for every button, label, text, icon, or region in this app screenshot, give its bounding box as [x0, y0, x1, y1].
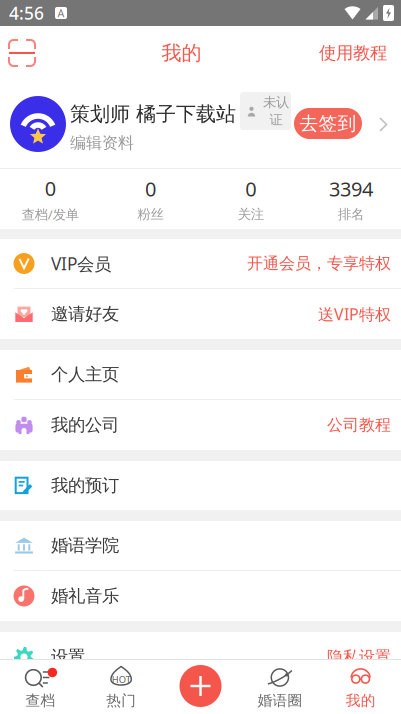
- staticText: 开通会员，专享特权: [247, 254, 391, 273]
- staticText: 婚语学院: [51, 535, 119, 556]
- staticText: 4:56: [9, 1, 44, 24]
- staticText: 我的预订: [51, 475, 119, 496]
- staticText: 证: [269, 111, 282, 128]
- staticText: 我的公司: [51, 414, 119, 436]
- staticText: 关注: [238, 206, 264, 222]
- staticText: 我的: [161, 41, 201, 65]
- button[interactable]: 个人主页: [0, 350, 401, 400]
- staticText: 0: [245, 175, 256, 202]
- staticText: 编辑资料: [70, 133, 134, 153]
- staticText: 设置: [51, 646, 85, 668]
- staticText: VIP会员: [51, 252, 111, 275]
- staticText: 送VIP特权: [318, 303, 391, 325]
- staticText: 去签到: [299, 112, 356, 135]
- staticText: 使用教程: [319, 42, 387, 64]
- button[interactable]: 我的公司: [0, 400, 401, 450]
- staticText: 婚礼音乐: [51, 585, 119, 607]
- staticText: 隐私设置: [327, 647, 391, 667]
- button[interactable]: 婚礼音乐: [0, 571, 401, 621]
- staticText: 0: [45, 175, 56, 201]
- staticText: 查档: [25, 691, 55, 709]
- staticText: 个人主页: [51, 364, 119, 385]
- staticText: 3394: [329, 175, 373, 202]
- button[interactable]: 婚语学院: [0, 521, 401, 571]
- button[interactable]: 查档: [0, 660, 81, 714]
- staticText: A: [57, 6, 64, 20]
- button[interactable]: HOT: [81, 660, 162, 714]
- staticText: 未认: [263, 94, 289, 110]
- button[interactable]: 0: [100, 169, 200, 229]
- button[interactable]: 3394: [301, 169, 401, 229]
- button[interactable]: Create new: [179, 665, 221, 707]
- staticText: 热门: [106, 691, 136, 709]
- staticText: 策划师 橘子下载站: [70, 102, 236, 126]
- button[interactable]: 0: [200, 169, 301, 229]
- staticText: 排名: [338, 206, 364, 222]
- staticText: 邀请好友: [51, 303, 119, 325]
- button[interactable]: 策划师 橘子下载站: [0, 80, 401, 168]
- button[interactable]: 婚语圈: [239, 660, 320, 714]
- staticText: 粉丝: [137, 206, 163, 222]
- button[interactable]: 使用教程: [319, 26, 401, 80]
- button[interactable]: 0: [0, 169, 100, 229]
- staticText: 我的: [346, 691, 376, 709]
- button[interactable]: 设置: [0, 632, 401, 682]
- staticText: HOT: [112, 673, 131, 686]
- button[interactable]: Scan QR code: [0, 26, 44, 80]
- staticText: 查档/发单: [22, 205, 79, 223]
- button[interactable]: 我的预订: [0, 461, 401, 510]
- button[interactable]: 邀请好友: [0, 289, 401, 339]
- staticText: 公司教程: [327, 415, 391, 435]
- button[interactable]: VIP会员: [0, 239, 401, 289]
- staticText: 0: [145, 175, 156, 202]
- button[interactable]: 我的: [320, 660, 401, 714]
- staticText: 婚语圈: [257, 691, 302, 709]
